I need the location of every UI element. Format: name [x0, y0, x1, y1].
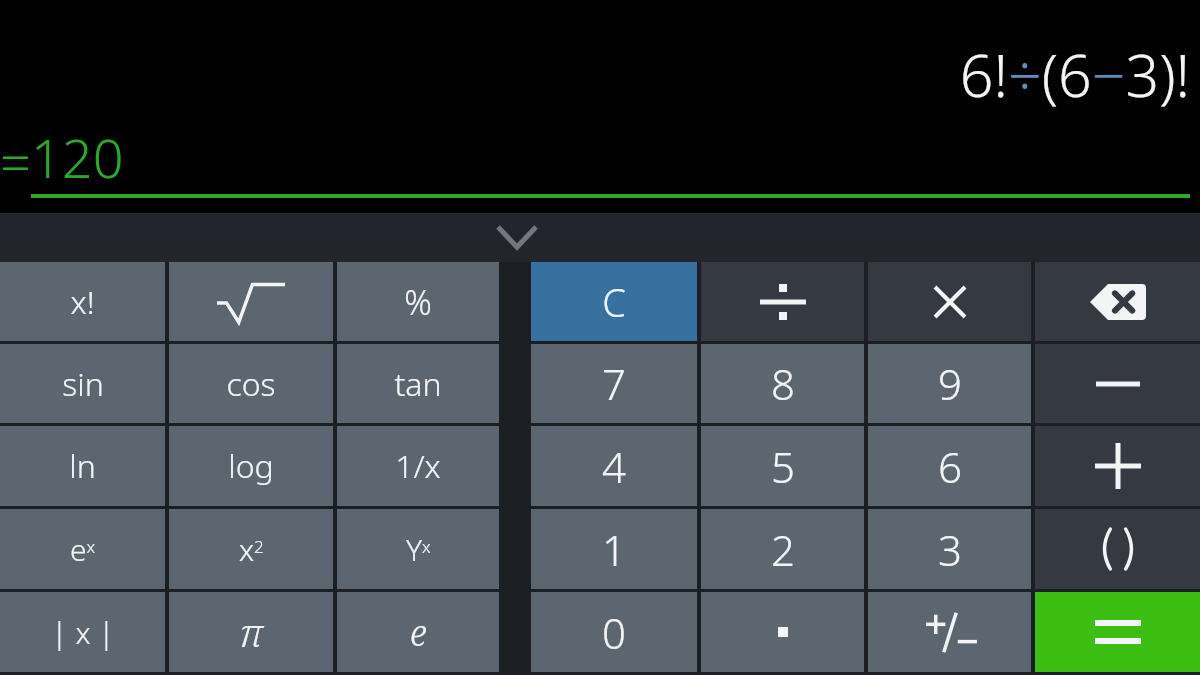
button[interactable]: Square root: [169, 262, 333, 341]
staticText: 6: [938, 438, 962, 495]
button[interactable]: tan: [337, 344, 499, 423]
staticText: C: [602, 276, 626, 328]
button[interactable]: x2: [169, 509, 333, 589]
button[interactable]: %: [337, 262, 499, 341]
button[interactable]: Collapse keypad: [490, 215, 544, 259]
button[interactable]: sin: [0, 344, 165, 423]
button[interactable]: 4: [531, 426, 697, 506]
staticText: %: [404, 279, 432, 325]
button[interactable]: Plus: [1035, 426, 1200, 506]
button[interactable]: [701, 592, 864, 672]
button[interactable]: 3: [868, 509, 1031, 589]
staticText: | x |: [51, 612, 115, 653]
button[interactable]: x!: [0, 262, 165, 341]
staticText: 6!÷(6−3)!: [959, 34, 1190, 114]
staticText: π: [239, 606, 263, 658]
staticText: 5: [771, 438, 795, 495]
button[interactable]: Parentheses: [1035, 509, 1200, 589]
button[interactable]: Equals: [1035, 592, 1200, 672]
button[interactable]: Pi: [169, 592, 333, 672]
staticText: 1: [602, 521, 626, 578]
staticText: 8: [771, 355, 795, 412]
button[interactable]: Backspace: [1035, 262, 1200, 341]
button[interactable]: 1: [531, 509, 697, 589]
button[interactable]: Multiply: [868, 262, 1031, 341]
staticText: =: [0, 124, 31, 198]
button[interactable]: Yx: [337, 509, 499, 589]
staticText: ln: [69, 444, 96, 488]
staticText: sin: [62, 362, 104, 406]
staticText: 1/x: [395, 444, 441, 488]
button[interactable]: 7: [531, 344, 697, 423]
button[interactable]: 2: [701, 509, 864, 589]
staticText: 4: [602, 438, 626, 495]
staticText: 7: [602, 355, 626, 412]
staticText: 120: [31, 120, 124, 194]
staticText: 3: [938, 521, 962, 578]
staticText: 2: [771, 521, 795, 578]
button[interactable]: | x |: [0, 592, 165, 672]
staticText: tan: [394, 362, 442, 406]
button[interactable]: Plus minus: [868, 592, 1031, 672]
button[interactable]: C: [531, 262, 697, 341]
button[interactable]: ln: [0, 426, 165, 506]
button[interactable]: log: [169, 426, 333, 506]
staticText: ex: [70, 529, 96, 570]
staticText: 9: [938, 355, 962, 412]
staticText: e: [410, 608, 427, 657]
button[interactable]: ex: [0, 509, 165, 589]
button[interactable]: Minus: [1035, 344, 1200, 423]
staticText: cos: [226, 362, 276, 406]
staticText: x!: [70, 280, 95, 324]
staticText: 0: [602, 604, 626, 661]
button[interactable]: 1/x: [337, 426, 499, 506]
button[interactable]: 0: [531, 592, 697, 672]
button[interactable]: e: [337, 592, 499, 672]
button[interactable]: 5: [701, 426, 864, 506]
button[interactable]: Divide: [701, 262, 864, 341]
staticText: log: [228, 444, 274, 488]
button[interactable]: 8: [701, 344, 864, 423]
staticText: Yx: [406, 529, 431, 570]
button[interactable]: 9: [868, 344, 1031, 423]
button[interactable]: 6: [868, 426, 1031, 506]
button[interactable]: cos: [169, 344, 333, 423]
staticText: x2: [239, 529, 264, 570]
